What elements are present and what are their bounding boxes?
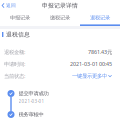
staticText: 退税信息 [6, 31, 30, 38]
staticText: 2021-03-01 00:45 [70, 60, 112, 68]
staticText: 申报记录 [10, 14, 30, 21]
button[interactable]: 申报记录 [0, 11, 40, 26]
staticText: 申报记录详情 [42, 2, 78, 9]
staticText: 当前状态: [4, 72, 25, 80]
staticText: 退税金额: [4, 48, 25, 56]
button[interactable]: 退税记录 [80, 11, 120, 26]
staticText: 申请时间: [4, 60, 25, 68]
button[interactable]: 缴税记录 [40, 11, 80, 26]
staticText: 一键显示更多中 [72, 73, 107, 79]
staticText: 返回 [6, 2, 16, 8]
button[interactable]: 返回 [0, 0, 22, 10]
staticText: 7861.43元 [88, 48, 112, 56]
staticText: 税务审核中 [18, 111, 43, 118]
staticText: 提交申请成功 [18, 90, 48, 97]
button[interactable]: 一键显示更多中 [72, 73, 112, 79]
staticText: 退税记录 [90, 14, 110, 21]
staticText: 2021-03-01 [18, 98, 44, 104]
staticText: 缴税记录 [50, 14, 70, 21]
